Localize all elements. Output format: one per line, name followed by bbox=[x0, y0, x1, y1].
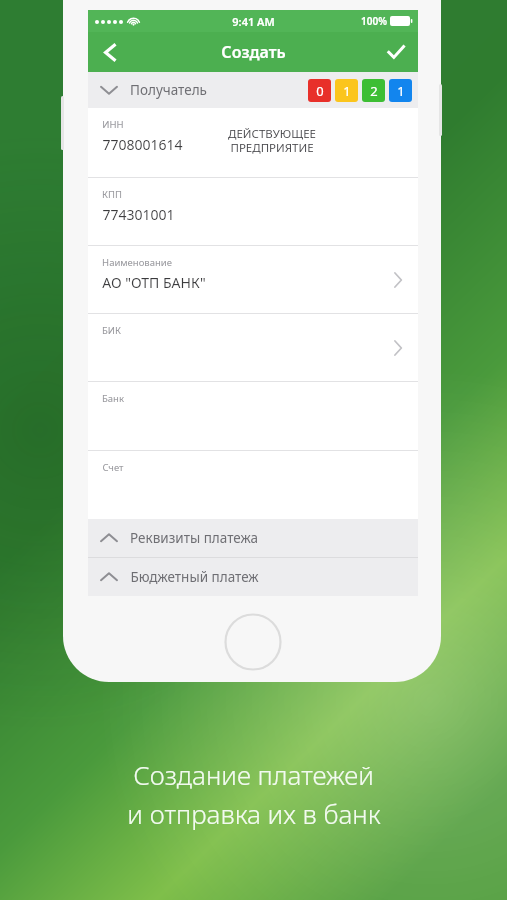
staticText: ИНН bbox=[102, 118, 124, 131]
staticText: Реквизиты платежа bbox=[130, 529, 258, 547]
staticText: 9:41 AM bbox=[232, 14, 275, 29]
button[interactable]: Получатель bbox=[88, 72, 418, 108]
staticText: Получатель bbox=[130, 81, 207, 99]
staticText: АО "ОТП БАНК" bbox=[102, 273, 206, 292]
staticText: Создать bbox=[221, 41, 286, 63]
button[interactable]: 2 bbox=[362, 79, 385, 102]
staticText: ДЕЙСТВУЮЩЕЕ ПРЕДПРИЯТИЕ bbox=[228, 126, 316, 156]
staticText: Банк bbox=[102, 392, 124, 405]
staticText: 0 bbox=[316, 82, 324, 100]
staticText: Наименование bbox=[102, 256, 172, 269]
staticText: 7708001614 bbox=[102, 135, 183, 154]
button[interactable]: КПП bbox=[88, 178, 418, 245]
button[interactable]: БИК bbox=[88, 314, 418, 381]
button[interactable]: 1 bbox=[335, 79, 358, 102]
button[interactable]: Счет bbox=[88, 451, 418, 519]
staticText: БИК bbox=[102, 324, 121, 337]
staticText: 2 bbox=[370, 82, 378, 100]
staticText: и отправка их в банк bbox=[127, 796, 381, 831]
staticText: Бюджетный платеж bbox=[130, 568, 259, 586]
staticText: 1 bbox=[343, 82, 351, 100]
staticText: Создание платежей bbox=[133, 757, 374, 792]
button[interactable]: 0 bbox=[308, 79, 331, 102]
button[interactable]: Наименование bbox=[88, 246, 418, 313]
button[interactable]: Банк bbox=[88, 382, 418, 450]
button[interactable]: Реквизиты платежа bbox=[88, 519, 418, 557]
button[interactable]: Бюджетный платеж bbox=[88, 558, 418, 596]
button[interactable]: 1 bbox=[389, 79, 412, 102]
staticText: 100% bbox=[361, 14, 387, 28]
staticText: Счет bbox=[102, 461, 124, 474]
button[interactable]: Назад bbox=[88, 32, 132, 72]
staticText: 774301001 bbox=[102, 205, 175, 224]
staticText: КПП bbox=[102, 188, 122, 201]
button[interactable]: Готово bbox=[374, 32, 418, 72]
button[interactable]: ИНН bbox=[88, 108, 418, 177]
staticText: 1 bbox=[397, 82, 405, 100]
